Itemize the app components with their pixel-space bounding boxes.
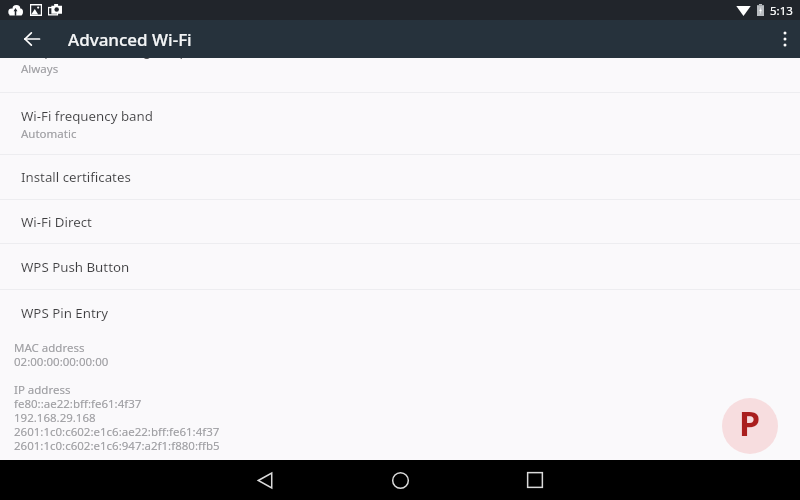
staticText: Wi-Fi Direct — [21, 213, 92, 231]
staticText: Always — [21, 61, 59, 77]
staticText: Wi-Fi frequency band — [21, 107, 153, 125]
button[interactable]: Wi-Fi frequency band — [0, 93, 800, 154]
button[interactable]: WPS Push Button — [0, 244, 800, 289]
button[interactable]: WPS Pin Entry — [0, 290, 800, 335]
button[interactable]: More options — [760, 20, 800, 58]
staticText: Install certificates — [21, 168, 131, 186]
button[interactable]: Home — [376, 460, 424, 500]
button[interactable]: Wi-Fi Direct — [0, 200, 800, 243]
staticText: Automatic — [21, 126, 77, 142]
staticText: 5:13 — [770, 3, 793, 19]
staticText: MAC address 02:00:00:00:00:00 IP address… — [14, 340, 220, 453]
button[interactable]: Keep Wi-Fi on during sleep — [0, 36, 800, 92]
button[interactable]: Recent apps — [511, 460, 559, 500]
staticText: WPS Pin Entry — [21, 304, 109, 322]
staticText: Keep Wi-Fi on during sleep — [21, 42, 188, 60]
button[interactable]: Back — [241, 460, 289, 500]
staticText: WPS Push Button — [21, 258, 130, 276]
staticText: Advanced Wi-Fi — [68, 28, 192, 51]
button[interactable]: Navigate up — [14, 20, 50, 58]
button[interactable]: Install certificates — [0, 155, 800, 199]
staticText: P — [739, 400, 761, 446]
